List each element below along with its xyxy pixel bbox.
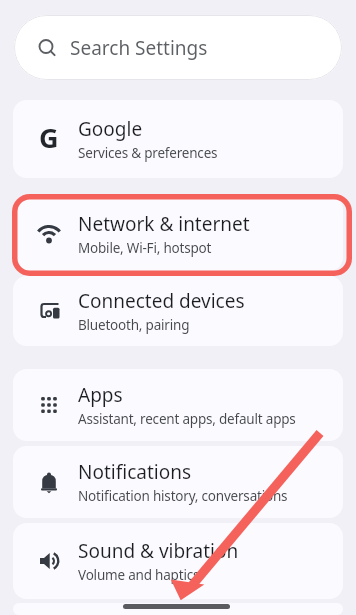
button[interactable]: Sound & vibration bbox=[13, 523, 343, 599]
staticText: Notification history, conversations bbox=[78, 487, 288, 505]
staticText: Sound & vibration bbox=[78, 538, 239, 564]
button[interactable]: Search Settings bbox=[14, 15, 342, 80]
button[interactable]: Notifications bbox=[13, 446, 343, 518]
staticText: Services & preferences bbox=[78, 144, 218, 162]
staticText: Network & internet bbox=[78, 211, 250, 237]
staticText: Mobile, Wi-Fi, hotspot bbox=[78, 239, 212, 257]
button[interactable]: G bbox=[13, 100, 343, 178]
staticText: Bluetooth, pairing bbox=[78, 316, 190, 334]
button[interactable]: Apps bbox=[13, 369, 343, 441]
staticText: Search Settings bbox=[70, 35, 208, 61]
staticText: Volume and haptics bbox=[78, 566, 200, 584]
staticText: Assistant, recent apps, default apps bbox=[78, 410, 296, 428]
staticText: Notifications bbox=[78, 459, 192, 485]
staticText: Apps bbox=[78, 382, 123, 408]
staticText: Google bbox=[78, 116, 143, 142]
button[interactable]: Network & internet bbox=[13, 196, 343, 271]
button[interactable]: Connected devices bbox=[13, 276, 343, 346]
staticText: Connected devices bbox=[78, 288, 245, 314]
staticText: G bbox=[39, 119, 59, 156]
